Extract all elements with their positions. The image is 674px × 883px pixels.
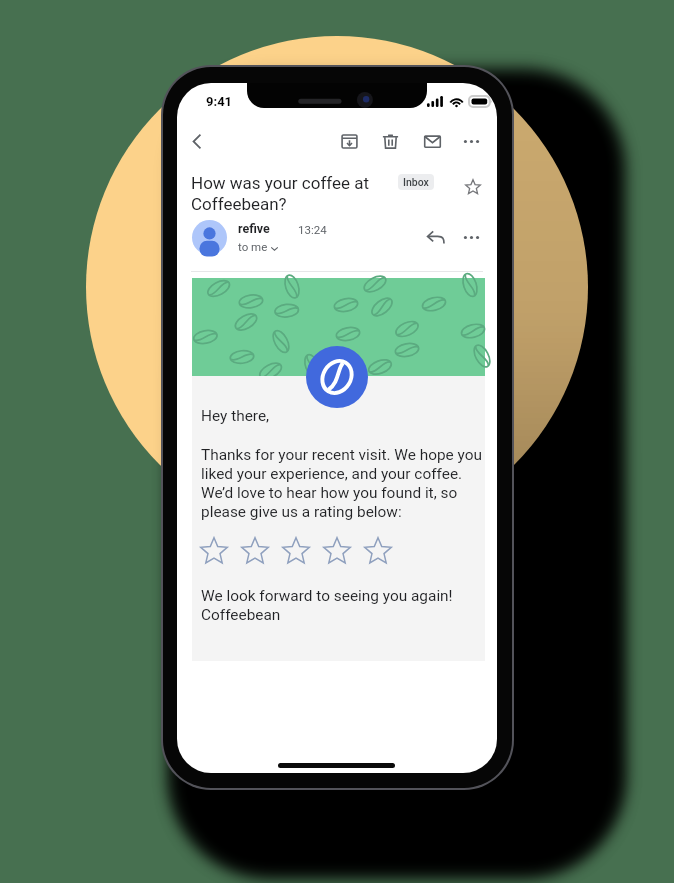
staticText: We look forward to seeing you again! Cof… bbox=[201, 587, 453, 623]
button[interactable]: Rate 5 stars bbox=[364, 535, 405, 565]
button[interactable]: Reply bbox=[421, 222, 451, 252]
button[interactable]: Rate 3 stars bbox=[282, 535, 323, 565]
staticText: Thanks for your recent visit. We hope yo… bbox=[201, 446, 483, 520]
button[interactable]: Rate 4 stars bbox=[323, 535, 364, 565]
button[interactable]: Rate 1 stars bbox=[200, 535, 241, 565]
button[interactable]: Rate 2 stars bbox=[241, 535, 282, 565]
button[interactable]: Delete bbox=[375, 126, 405, 156]
button[interactable]: More options bbox=[456, 222, 486, 252]
button[interactable]: Inbox bbox=[398, 174, 434, 190]
button[interactable]: Star bbox=[458, 171, 488, 201]
staticText: to me bbox=[238, 240, 268, 253]
button[interactable]: Mark unread bbox=[417, 126, 447, 156]
button[interactable]: More options bbox=[456, 126, 486, 156]
staticText: refive bbox=[238, 221, 270, 236]
button[interactable]: Back bbox=[182, 126, 212, 156]
staticText: Inbox bbox=[403, 176, 429, 188]
staticText: 13:24 bbox=[298, 223, 327, 236]
button[interactable]: Archive bbox=[334, 126, 364, 156]
staticText: 9:41 bbox=[206, 94, 233, 109]
staticText: How was your coffee at Coffeebean? bbox=[191, 173, 370, 214]
staticText: Hey there, bbox=[201, 407, 270, 425]
